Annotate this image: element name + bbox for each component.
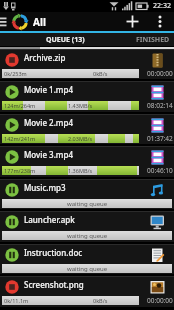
staticText: QUEUE (13) (46, 35, 85, 45)
button[interactable] (5, 85, 19, 99)
staticText: 00:00:00 (147, 69, 173, 78)
button[interactable] (5, 53, 19, 67)
staticText: 1.43MB/s (68, 102, 93, 109)
staticText: 0k/11.1m (4, 297, 29, 304)
staticText: 00:00:00 (147, 296, 173, 305)
staticText: 1.36MB/s (68, 167, 93, 174)
staticText: 22:32 (153, 1, 171, 11)
staticText: 0k/253m (4, 70, 27, 77)
staticText: waiting queue (67, 200, 108, 208)
staticText: waiting queue (67, 265, 108, 273)
button[interactable] (5, 118, 19, 132)
staticText: 00:46:10 (147, 166, 173, 175)
staticText: 142m/241m (4, 135, 36, 142)
staticText: Movie 3.mp4 (24, 149, 73, 160)
staticText: Launcher.apk (24, 214, 75, 225)
button[interactable]: Launcher.apk (0, 209, 174, 242)
staticText: 177m/238m (4, 167, 36, 174)
button[interactable] (0, 12, 8, 31)
staticText: Music.mp3 (24, 182, 66, 193)
button[interactable]: All (33, 12, 63, 31)
button[interactable]: Screenshot.png (0, 274, 174, 307)
staticText: Movie 1.mp4 (24, 84, 73, 95)
staticText: waiting queue (67, 232, 108, 240)
button[interactable] (125, 14, 140, 29)
staticText: Archive.zip (24, 52, 66, 63)
button[interactable]: FINISHED (125, 33, 174, 46)
button[interactable]: Archive.zip (0, 47, 174, 80)
button[interactable] (5, 215, 19, 229)
button[interactable]: Movie 3.mp4 (0, 144, 174, 177)
button[interactable] (5, 280, 19, 294)
button[interactable] (153, 12, 167, 31)
staticText: 2.03MB/s (68, 135, 93, 142)
button[interactable]: Music.mp3 (0, 177, 174, 210)
button[interactable]: Instruction.doc (0, 242, 174, 275)
staticText: 08:02:14 (147, 101, 173, 110)
staticText: Screenshot.png (24, 279, 84, 290)
staticText: Movie 2.mp4 (24, 117, 73, 128)
staticText: Instruction.doc (24, 247, 83, 258)
button[interactable] (5, 248, 19, 262)
staticText: 01:37:42 (147, 134, 173, 143)
button[interactable]: QUEUE (13) (30, 33, 100, 46)
button[interactable] (5, 150, 19, 164)
button[interactable]: Movie 1.mp4 (0, 79, 174, 112)
staticText: FINISHED (136, 35, 170, 45)
staticText: All (33, 15, 46, 29)
staticText: 0kB/s (93, 70, 108, 77)
button[interactable] (5, 183, 19, 197)
staticText: 124m/264m (4, 102, 36, 109)
staticText: 0kB/s (93, 297, 108, 304)
button[interactable]: Movie 2.mp4 (0, 112, 174, 145)
